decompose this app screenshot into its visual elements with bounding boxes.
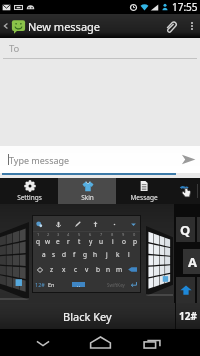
- button[interactable]: Big key theme: [174, 204, 200, 303]
- staticText: 9: [122, 232, 125, 237]
- staticText: r: [67, 237, 70, 246]
- staticText: j: [106, 250, 108, 259]
- staticText: o: [122, 237, 126, 246]
- staticText: l: [128, 250, 130, 259]
- staticText: h: [93, 250, 98, 259]
- button[interactable]: Recent apps: [137, 329, 167, 356]
- staticText: a: [42, 250, 46, 259]
- button[interactable]: Type message: [0, 146, 176, 173]
- staticText: i: [112, 237, 114, 246]
- staticText: e: [56, 237, 60, 246]
- staticText: En: [48, 281, 55, 288]
- staticText: Settings: [17, 193, 42, 202]
- button[interactable]: To: [0, 38, 200, 58]
- staticText: Black Key: [63, 309, 112, 324]
- staticText: x: [62, 265, 66, 274]
- staticText: p: [133, 237, 137, 246]
- staticText: Q: [180, 221, 191, 239]
- staticText: v: [85, 265, 89, 274]
- staticText: 12#: [179, 309, 197, 323]
- staticText: Skin: [81, 193, 94, 202]
- staticText: g: [83, 250, 87, 259]
- staticText: 1: [37, 232, 40, 237]
- button[interactable]: More options: [183, 14, 200, 38]
- button[interactable]: Next theme: [146, 226, 173, 296]
- button[interactable]: Settings: [0, 178, 58, 204]
- staticText: m: [116, 265, 123, 274]
- staticText: 0: [133, 232, 136, 237]
- button[interactable]: Hide keyboard: [28, 329, 58, 356]
- button[interactable]: 1: [33, 216, 140, 292]
- staticText: b: [96, 265, 100, 274]
- button[interactable]: Previous theme: [0, 222, 29, 300]
- staticText: A: [188, 253, 197, 271]
- staticText: SwiftKey: [107, 282, 125, 288]
- staticText: 5: [78, 232, 81, 237]
- staticText: 7: [100, 232, 103, 237]
- button[interactable]: Send: [176, 146, 200, 173]
- button[interactable]: Gesture input: [172, 178, 200, 204]
- staticText: Message: [130, 193, 158, 202]
- staticText: d: [62, 250, 66, 259]
- staticText: k: [116, 250, 120, 259]
- staticText: c: [74, 265, 78, 274]
- button[interactable]: Numbers and symbols: [176, 303, 200, 329]
- button[interactable]: Attach: [157, 14, 183, 38]
- staticText: f: [73, 250, 76, 259]
- staticText: u: [99, 237, 104, 246]
- button[interactable]: Message: [116, 178, 172, 204]
- staticText: 8: [111, 232, 114, 237]
- staticText: z: [50, 265, 54, 274]
- staticText: s: [52, 250, 56, 259]
- staticText: 3: [57, 232, 60, 237]
- button[interactable]: Black Key: [0, 303, 175, 329]
- button[interactable]: Home: [85, 329, 115, 356]
- staticText: 12#: [35, 281, 45, 288]
- staticText: ␣: [77, 282, 81, 287]
- staticText: w: [45, 237, 51, 246]
- button[interactable]: Skin: [58, 178, 116, 204]
- staticText: y: [89, 237, 93, 246]
- staticText: Type message: [9, 154, 70, 166]
- button[interactable]: Navigate up: [0, 14, 28, 38]
- staticText: 4: [67, 232, 70, 237]
- staticText: 6: [89, 232, 92, 237]
- staticText: q: [36, 237, 40, 246]
- staticText: To: [9, 42, 20, 55]
- staticText: New message: [28, 19, 101, 34]
- staticText: 17:55: [172, 0, 198, 14]
- staticText: n: [106, 265, 111, 274]
- staticText: t: [78, 237, 81, 246]
- staticText: 2: [47, 232, 50, 237]
